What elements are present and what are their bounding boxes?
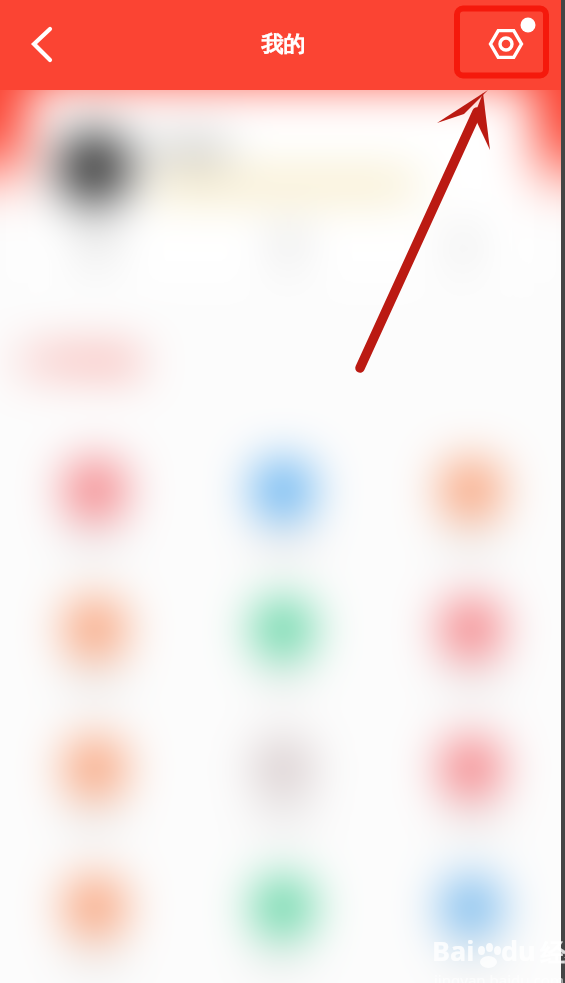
button[interactable]: 我的评价 — [0, 737, 189, 847]
button[interactable]: Settings — [478, 16, 534, 72]
staticText: 用户昵称 — [150, 140, 226, 164]
staticText: 我的钱包 — [67, 674, 123, 692]
button[interactable]: 我的收藏 — [189, 459, 377, 569]
staticText: 浏览记录 — [443, 535, 499, 553]
staticText: Bai — [432, 932, 475, 969]
staticText: jingyan.baidu.com — [434, 970, 564, 983]
button[interactable]: 意见反馈 — [0, 876, 189, 983]
button[interactable]: 地址管理 — [189, 737, 377, 847]
staticText: 优惠券 — [262, 674, 304, 692]
staticText: 我的订单 — [67, 535, 123, 553]
staticText: 关于我们 — [443, 952, 499, 970]
staticText: 128 — [78, 225, 113, 252]
staticText: 我的收藏 — [255, 535, 311, 553]
button[interactable]: 积分商城 — [377, 598, 565, 708]
staticText: 我的 — [261, 31, 305, 59]
button[interactable]: Back — [16, 23, 60, 67]
button[interactable]: 优惠券 — [189, 598, 377, 708]
button[interactable]: 我的钱包 — [0, 598, 189, 708]
button[interactable]: 关于我们 — [377, 876, 565, 983]
staticText: 常用功能 — [41, 347, 137, 377]
staticText: 积分商城 — [443, 674, 499, 692]
staticText: 我的评价 — [67, 813, 123, 831]
staticText: du — [501, 932, 536, 969]
button[interactable]: 帮助中心 — [189, 876, 377, 983]
button[interactable]: 我的订单 — [0, 459, 189, 569]
staticText: 在线客服 — [443, 813, 499, 831]
staticText: 经验 — [540, 938, 565, 969]
staticText: 意见反馈 — [67, 952, 123, 970]
staticText: 帮助中心 — [255, 952, 311, 970]
button[interactable]: 浏览记录 — [377, 459, 565, 569]
button[interactable]: 在线客服 — [377, 737, 565, 847]
